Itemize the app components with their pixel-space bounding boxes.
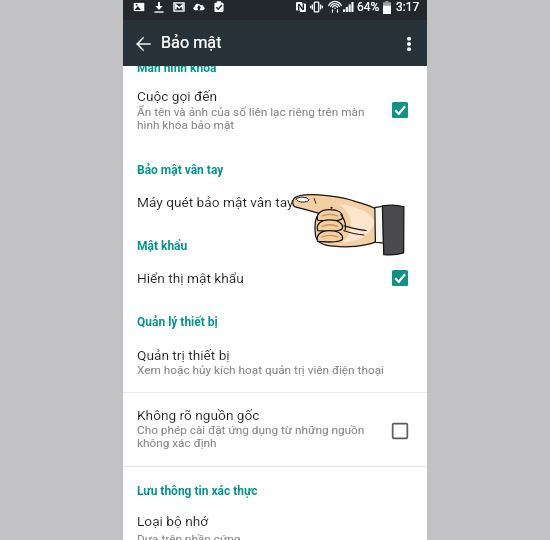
staticText: Bảo mật [161,33,222,52]
button[interactable]: Máy quét bảo mật vân tay [123,194,427,212]
staticText: Quản lý thiết bị [137,315,218,329]
staticText: Dựa trên phần cứng [137,532,241,540]
staticText: Lưu thông tin xác thực [137,484,258,498]
button[interactable]: Navigate up [132,33,154,55]
staticText: Xem hoặc hủy kích hoạt quản trị viên điệ… [137,363,384,377]
staticText: Loại bộ nhớ [137,513,209,529]
button[interactable]: Hiển thị mật khẩu [123,270,427,288]
staticText: Mật khẩu [137,239,188,253]
staticText: 3:17 [396,0,420,14]
staticText: Bảo mật vân tay [137,163,224,177]
button[interactable]: Cuộc gọi đến [123,88,427,106]
staticText: Màn hình khóa [137,61,217,75]
button[interactable]: Không rõ nguồn gốc [123,407,427,425]
button[interactable]: Loại bộ nhớ [123,513,427,531]
button[interactable]: Off [384,415,416,447]
button[interactable]: Quản trị thiết bị [123,347,427,365]
button[interactable]: On [384,94,416,126]
staticText: Hiển thị mật khẩu [137,270,244,286]
staticText: 64% [357,0,380,14]
staticText: Cho phép cài đặt ứng dụng từ những nguồn… [137,423,372,450]
staticText: Máy quét bảo mật vân tay [137,194,294,210]
button[interactable]: More options [397,32,421,56]
staticText: Ẩn tên và ảnh của số liên lạc riêng trên… [137,105,372,132]
staticText: Quản trị thiết bị [137,347,230,363]
staticText: Không rõ nguồn gốc [137,407,260,423]
staticText: Cuộc gọi đến [137,88,218,104]
button[interactable]: On [384,262,416,294]
